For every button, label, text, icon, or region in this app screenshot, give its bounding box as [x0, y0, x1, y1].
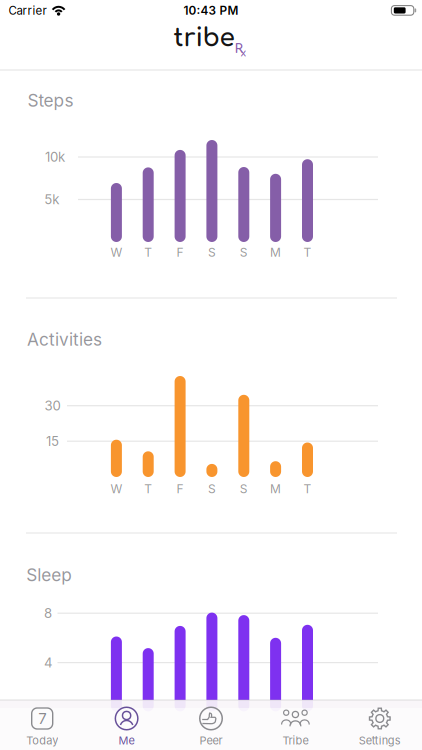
staticText: 10:43 PM	[183, 3, 238, 18]
button[interactable]: 7	[0, 700, 84, 750]
staticText: 5k	[44, 191, 59, 207]
staticText: Today	[26, 734, 58, 747]
staticText: Tribe	[282, 734, 308, 747]
staticText: 10k	[45, 149, 65, 165]
button[interactable]: Me	[85, 700, 169, 750]
staticText: 15	[46, 433, 59, 449]
staticText: S	[240, 245, 248, 260]
staticText: T	[144, 481, 152, 496]
staticText: F	[177, 481, 184, 496]
staticText: T	[144, 245, 152, 260]
staticText: Me	[119, 734, 135, 747]
staticText: Steps	[27, 90, 73, 111]
staticText: Peer	[199, 734, 222, 747]
button[interactable]: Peer	[169, 700, 253, 750]
staticText: M	[270, 481, 281, 496]
staticText: R	[235, 41, 243, 56]
staticText: F	[177, 245, 184, 260]
staticText: 7	[38, 709, 46, 727]
staticText: W	[110, 481, 122, 496]
staticText: T	[303, 245, 311, 260]
staticText: T	[303, 481, 311, 496]
staticText: tribe	[173, 24, 234, 52]
staticText: 8	[44, 605, 52, 621]
button[interactable]: Settings	[338, 700, 422, 750]
staticText: 30	[45, 398, 61, 414]
staticText: Activities	[27, 329, 102, 350]
staticText: S	[208, 481, 216, 496]
staticText: S	[240, 481, 248, 496]
staticText: M	[270, 245, 281, 260]
staticText: x	[240, 48, 246, 59]
staticText: Carrier	[8, 3, 46, 17]
staticText: W	[110, 245, 122, 260]
staticText: Sleep	[26, 565, 72, 585]
button[interactable]: Tribe	[253, 700, 337, 750]
staticText: 4	[44, 655, 53, 671]
staticText: Settings	[359, 734, 401, 747]
staticText: S	[208, 245, 216, 260]
